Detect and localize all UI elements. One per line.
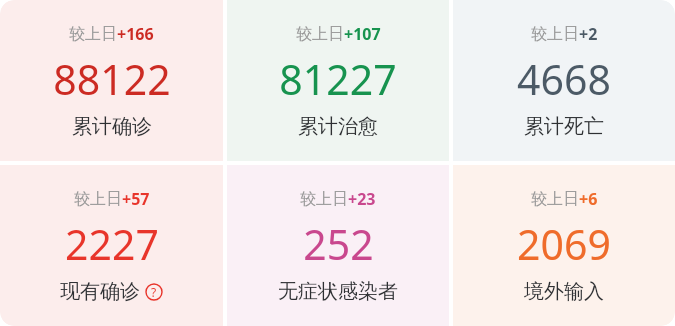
staticText: 较上日 [74, 189, 122, 209]
staticText: +166 [117, 23, 154, 45]
staticText: +23 [348, 188, 376, 210]
button[interactable]: 说明 [145, 283, 163, 301]
button[interactable]: 较上日 [227, 165, 449, 326]
button[interactable]: 较上日 [227, 0, 449, 161]
staticText: 较上日 [69, 24, 117, 44]
staticText: 4668 [517, 51, 611, 107]
staticText: ? [151, 284, 157, 300]
staticText: 累计确诊 [72, 114, 152, 139]
staticText: 88122 [53, 51, 171, 107]
staticText: 累计死亡 [524, 114, 604, 139]
staticText: 较上日 [531, 189, 579, 209]
staticText: 81227 [279, 51, 397, 107]
staticText: +2 [579, 23, 598, 45]
staticText: 较上日 [300, 189, 348, 209]
staticText: +6 [579, 188, 598, 210]
staticText: 无症状感染者 [278, 279, 398, 304]
button[interactable]: 较上日 [453, 165, 675, 326]
button[interactable]: 较上日 [0, 165, 223, 326]
staticText: 累计治愈 [298, 114, 378, 139]
staticText: 252 [303, 216, 374, 272]
staticText: 较上日 [531, 24, 579, 44]
button[interactable]: 较上日 [453, 0, 675, 161]
staticText: 较上日 [296, 24, 344, 44]
staticText: +107 [344, 23, 381, 45]
staticText: +57 [122, 188, 150, 210]
staticText: 2069 [517, 216, 611, 272]
button[interactable]: 较上日 [0, 0, 223, 161]
staticText: 2227 [65, 216, 159, 272]
staticText: 境外输入 [524, 279, 604, 304]
staticText: 现有确诊 [60, 279, 140, 304]
